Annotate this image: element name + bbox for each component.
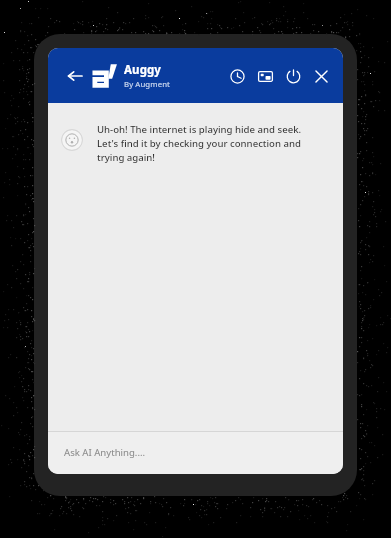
button[interactable]: History <box>223 62 251 90</box>
staticText: By Augment <box>124 79 170 90</box>
staticText: Uh-oh! The internet is playing hide and … <box>97 123 319 164</box>
staticText: Auggy <box>124 62 162 78</box>
button[interactable]: Back <box>58 59 92 93</box>
button[interactable]: Ask AI Anything.... <box>48 432 343 474</box>
staticText: Ask AI Anything.... <box>64 446 146 459</box>
button[interactable]: End session <box>279 62 307 90</box>
button[interactable]: Minimize <box>251 62 279 90</box>
button[interactable]: Close <box>307 62 335 90</box>
